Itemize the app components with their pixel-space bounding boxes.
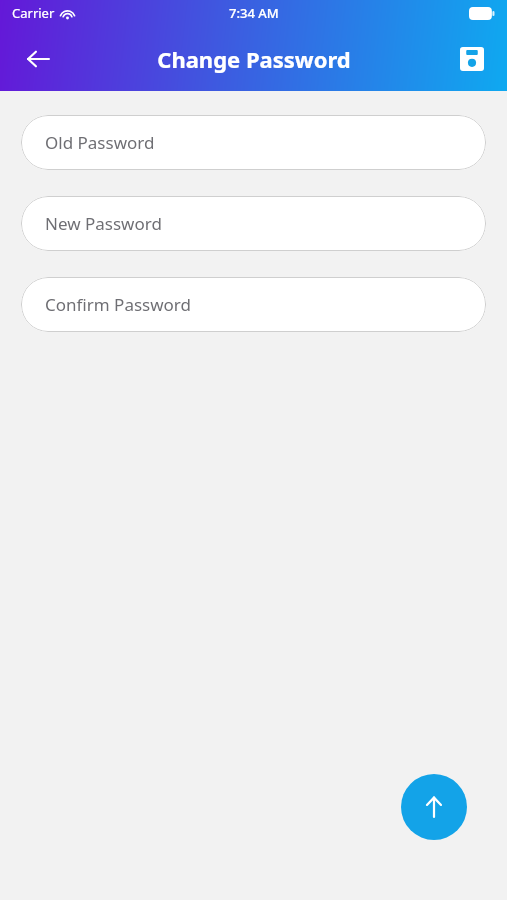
staticText: Old Password xyxy=(45,131,155,154)
button[interactable]: New Password xyxy=(21,196,486,251)
button[interactable]: Confirm Password xyxy=(21,277,486,332)
staticText: Change Password xyxy=(157,44,351,74)
staticText: New Password xyxy=(45,212,162,235)
staticText: Carrier xyxy=(12,4,55,22)
staticText: Confirm Password xyxy=(45,293,191,316)
button[interactable]: Save xyxy=(451,38,493,80)
button[interactable]: Old Password xyxy=(21,115,486,170)
button[interactable]: Submit xyxy=(401,774,467,840)
staticText: 7:34 AM xyxy=(229,4,279,22)
button[interactable]: Back xyxy=(16,37,60,81)
